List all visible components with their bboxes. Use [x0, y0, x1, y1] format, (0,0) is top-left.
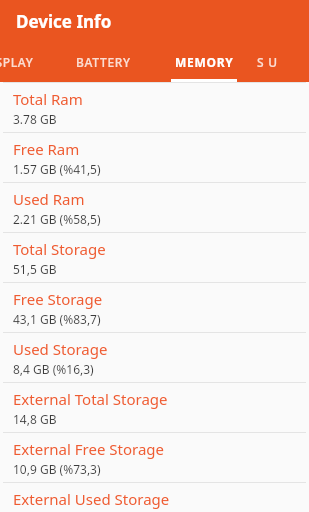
staticText: External Total Storage: [13, 389, 168, 409]
staticText: Free Storage: [13, 289, 103, 309]
staticText: Total Storage: [13, 239, 106, 259]
staticText: 1.57 GB (%41,5): [13, 161, 101, 177]
staticText: 8,4 GB (%16,3): [13, 361, 94, 377]
staticText: MEMORY: [175, 54, 234, 70]
staticText: 2.21 GB (%58,5): [13, 211, 101, 227]
button[interactable]: MEMORY: [151, 52, 257, 82]
staticText: Used Storage: [13, 339, 108, 359]
staticText: 3.78 GB: [13, 111, 57, 127]
staticText: 51,5 GB: [13, 261, 57, 277]
button[interactable]: Total Ram: [0, 83, 309, 132]
staticText: External Used Storage: [13, 489, 170, 509]
staticText: SENSORS: [257, 54, 268, 70]
button[interactable]: External Total Storage: [0, 383, 309, 432]
button[interactable]: Used Storage: [0, 333, 309, 382]
staticText: 14,8 GB: [13, 411, 57, 427]
button[interactable]: Total Storage: [0, 233, 309, 282]
button[interactable]: SENSORS: [257, 52, 268, 82]
staticText: DISPLAY: [0, 54, 34, 70]
staticText: Device Info: [16, 10, 112, 33]
staticText: 10,9 GB (%73,3): [13, 461, 101, 477]
button[interactable]: External Used Storage: [0, 483, 309, 512]
button[interactable]: External Free Storage: [0, 433, 309, 482]
staticText: Used Ram: [13, 189, 85, 209]
button[interactable]: Used Ram: [0, 183, 309, 232]
button[interactable]: Free Ram: [0, 133, 309, 182]
button[interactable]: Free Storage: [0, 283, 309, 332]
staticText: Free Ram: [13, 139, 80, 159]
staticText: External Free Storage: [13, 439, 165, 459]
button[interactable]: DISPLAY: [0, 52, 56, 82]
staticText: 43,1 GB (%83,7): [13, 311, 101, 327]
staticText: Total Ram: [13, 89, 83, 109]
staticText: BATTERY: [76, 54, 131, 70]
button[interactable]: BATTERY: [56, 52, 151, 82]
